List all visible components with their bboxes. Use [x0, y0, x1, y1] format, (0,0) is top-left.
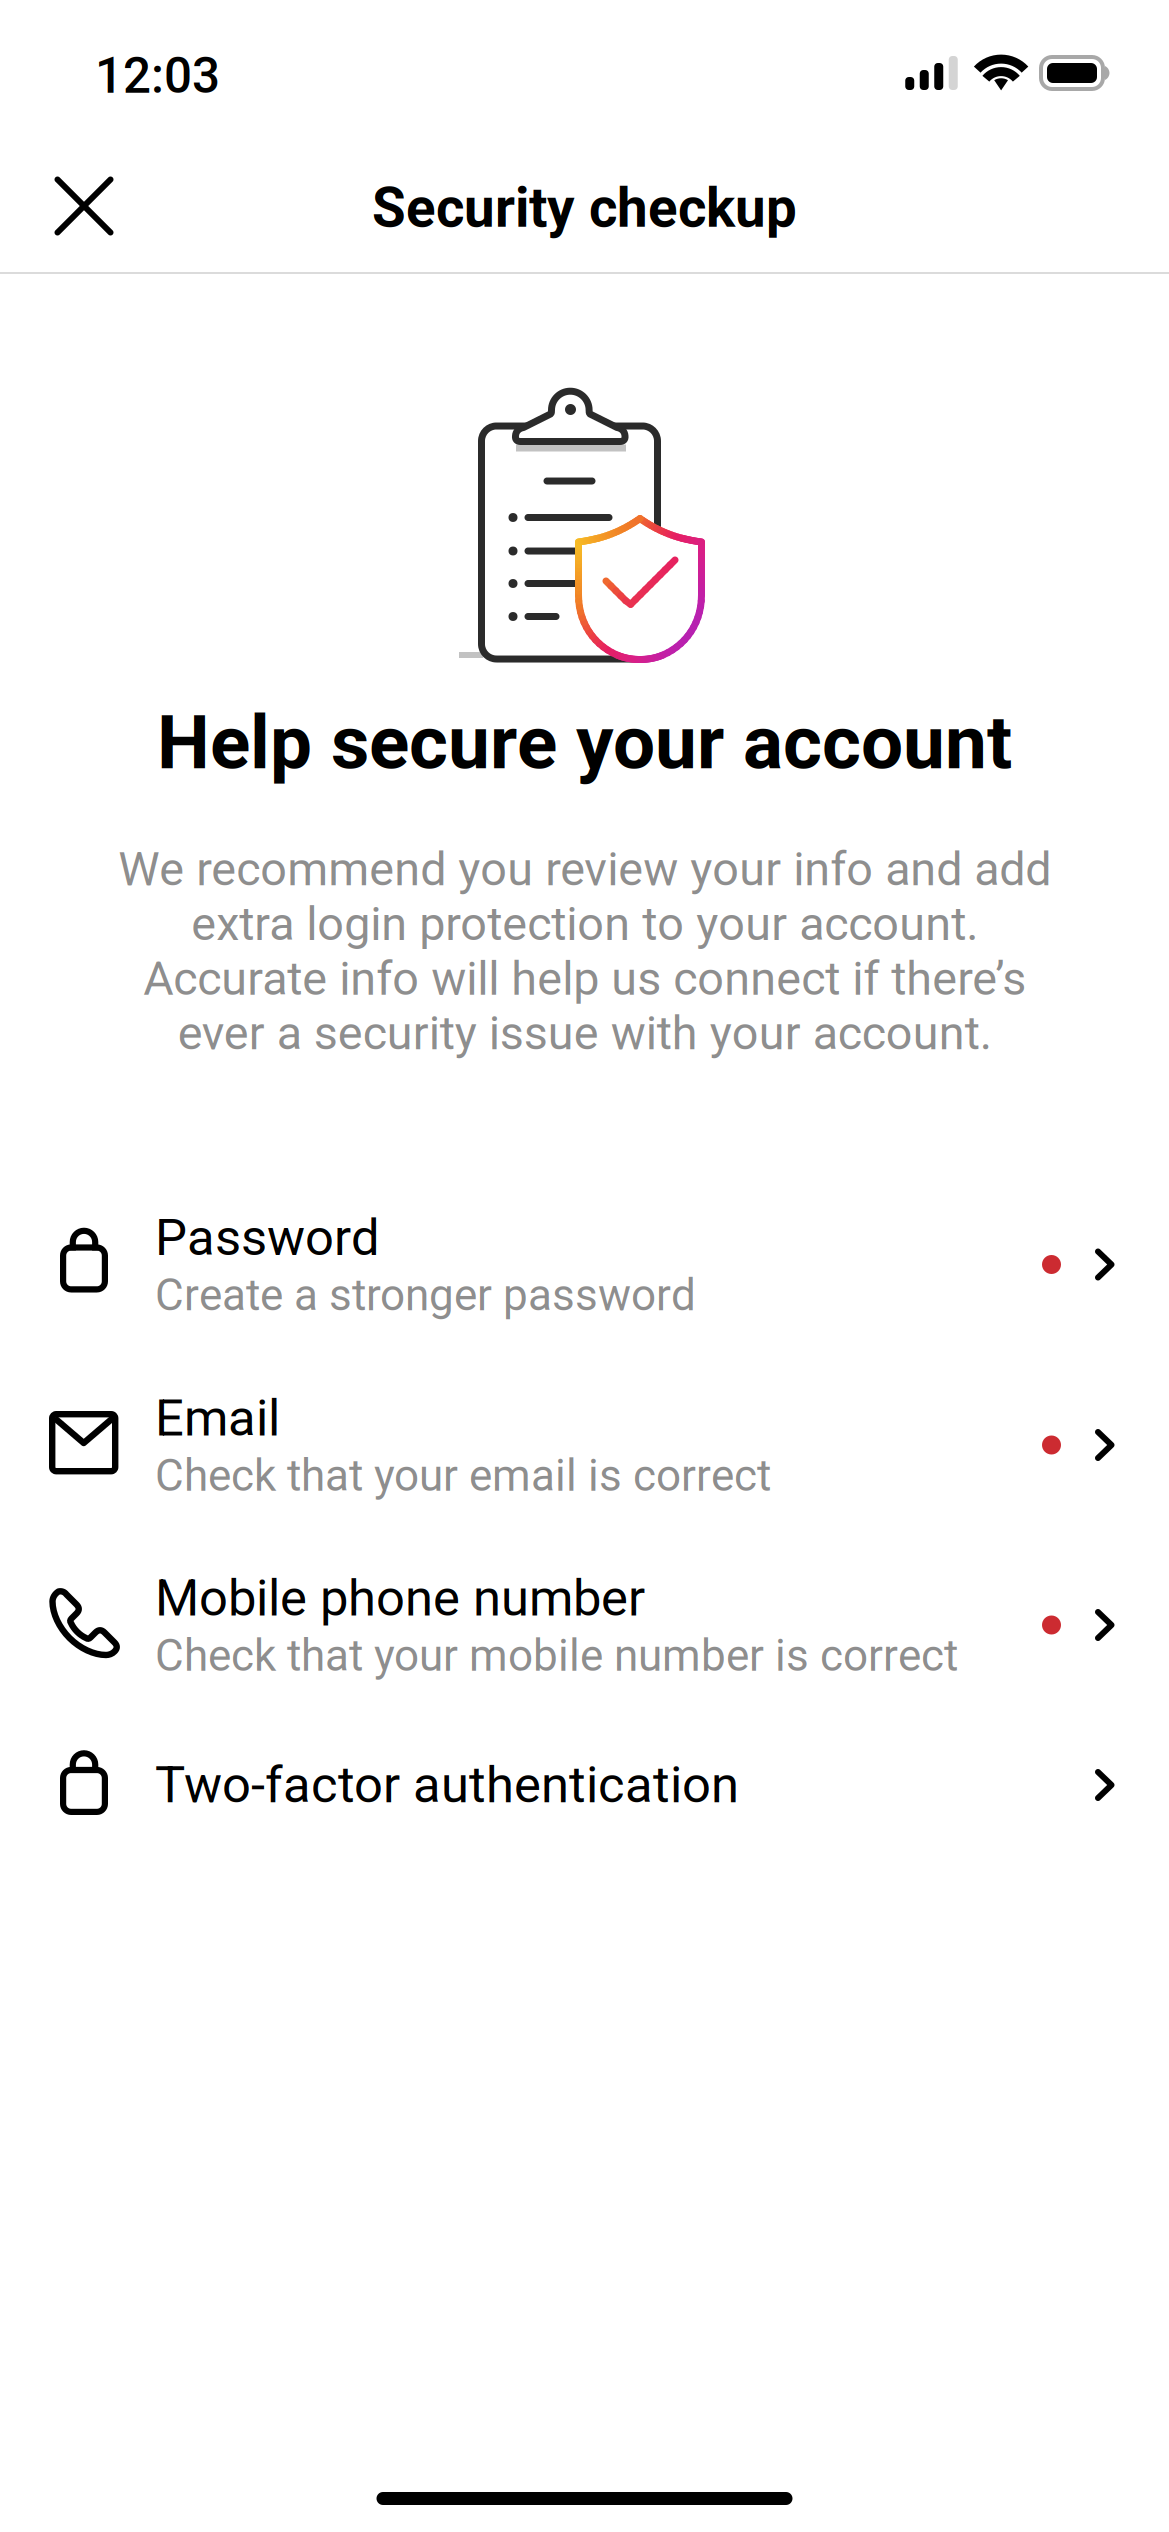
staticText: Create a stronger password — [155, 1269, 696, 1321]
staticText: Check that your mobile number is correct — [155, 1630, 958, 1681]
button[interactable]: Close — [26, 148, 142, 264]
button[interactable]: Email — [0, 1355, 1169, 1535]
staticText: We recommend you review your info and ad… — [118, 842, 1051, 1061]
staticText: Email — [155, 1388, 280, 1448]
staticText: Security checkup — [372, 176, 797, 240]
staticText: Password — [155, 1208, 380, 1267]
button[interactable]: Two-factor authentication — [0, 1709, 1169, 1861]
staticText: Mobile phone number — [155, 1568, 645, 1628]
staticText: Help secure your account — [157, 699, 1012, 786]
staticText: 12:03 — [95, 47, 220, 105]
staticText: Check that your email is correct — [155, 1450, 771, 1501]
button[interactable]: Password — [0, 1174, 1169, 1355]
staticText: Two-factor authentication — [155, 1755, 739, 1815]
button[interactable]: Mobile phone number — [0, 1535, 1169, 1715]
